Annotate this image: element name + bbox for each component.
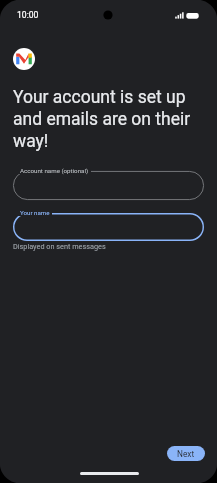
button[interactable]: Your name xyxy=(13,213,204,241)
button[interactable]: Next xyxy=(167,446,205,461)
staticText: Your account is set up and emails are on… xyxy=(13,87,204,152)
staticText: Your name xyxy=(20,209,50,216)
staticText: Next xyxy=(177,449,195,459)
staticText: Account name (optional) xyxy=(20,167,89,174)
staticText: 10:00 xyxy=(17,10,39,20)
staticText: Displayed on sent messages xyxy=(13,242,106,251)
button[interactable]: Account name (optional) xyxy=(13,171,204,200)
